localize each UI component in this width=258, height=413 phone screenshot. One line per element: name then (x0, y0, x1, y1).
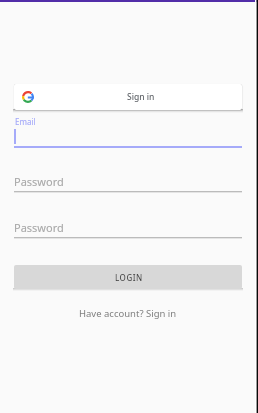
button[interactable]: LOGIN (14, 265, 242, 289)
button[interactable] (14, 237, 242, 240)
other: Google (22, 91, 34, 103)
button[interactable]: Have account? Sign in (79, 307, 177, 320)
staticText: Sign in (127, 91, 155, 103)
staticText: Password (14, 220, 64, 235)
button[interactable]: Google (14, 84, 242, 110)
staticText: Password (14, 174, 64, 189)
staticText: LOGIN (115, 272, 143, 283)
button[interactable] (14, 191, 242, 194)
staticText: Email (15, 116, 36, 127)
